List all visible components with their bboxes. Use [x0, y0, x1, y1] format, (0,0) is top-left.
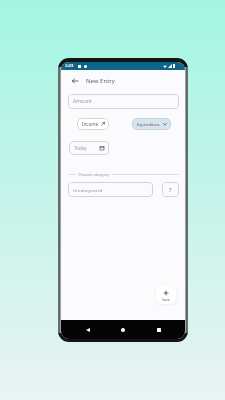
staticText: Uncategorized — [73, 187, 103, 193]
staticText: New Entry — [86, 77, 115, 85]
button[interactable]: Income — [77, 118, 109, 130]
staticText: Today — [74, 145, 87, 151]
staticText: Amount — [73, 98, 92, 105]
button[interactable]: Uncategorized — [68, 182, 153, 197]
button[interactable]: Expenditure — [132, 118, 171, 130]
button[interactable]: Back — [79, 321, 97, 339]
button[interactable]: Today — [69, 141, 109, 155]
staticText: 2:23 — [65, 63, 74, 69]
button[interactable]: Save — [156, 286, 176, 304]
staticText: ? — [169, 186, 172, 193]
button[interactable]: Home — [114, 321, 132, 339]
staticText: Income — [82, 121, 98, 127]
staticText: Choose category — [78, 172, 110, 177]
staticText: Save — [162, 297, 170, 302]
button[interactable]: Category help — [162, 182, 179, 197]
button[interactable]: Back — [68, 74, 81, 87]
staticText: Expenditure — [137, 122, 160, 127]
button[interactable]: Amount — [68, 94, 179, 109]
button[interactable]: Recents — [150, 321, 168, 339]
